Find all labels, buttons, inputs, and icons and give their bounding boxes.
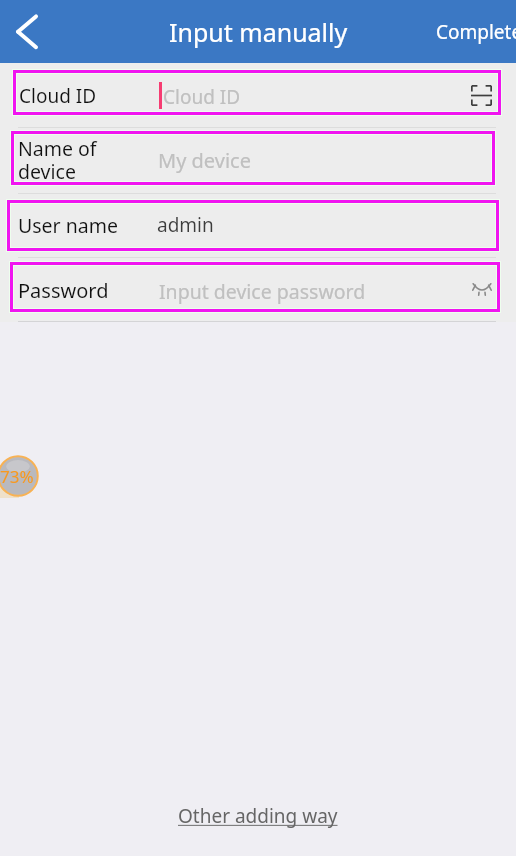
- button[interactable]: Back: [4, 8, 50, 54]
- staticText: Input manually: [169, 15, 348, 49]
- button[interactable]: Scan QR code: [471, 85, 492, 106]
- button[interactable]: Complete: [436, 19, 516, 45]
- staticText: User name: [18, 212, 118, 239]
- button[interactable]: Password field: [10, 262, 500, 312]
- staticText: Cloud ID: [19, 83, 97, 109]
- button[interactable]: Name of device field: [11, 131, 495, 185]
- button[interactable]: User name field: [7, 200, 499, 251]
- staticText: Name of device: [18, 135, 97, 185]
- button[interactable]: Cloud ID field: [13, 70, 501, 115]
- staticText: Cloud ID: [163, 84, 241, 110]
- staticText: admin: [157, 212, 214, 238]
- staticText: 73%: [0, 465, 34, 488]
- staticText: Password: [18, 277, 109, 304]
- staticText: Input device password: [159, 278, 366, 305]
- button[interactable]: Battery 73 percent: [0, 455, 39, 497]
- button[interactable]: Other adding way: [178, 803, 338, 829]
- button[interactable]: Show password: [472, 283, 492, 295]
- staticText: My device: [158, 147, 251, 174]
